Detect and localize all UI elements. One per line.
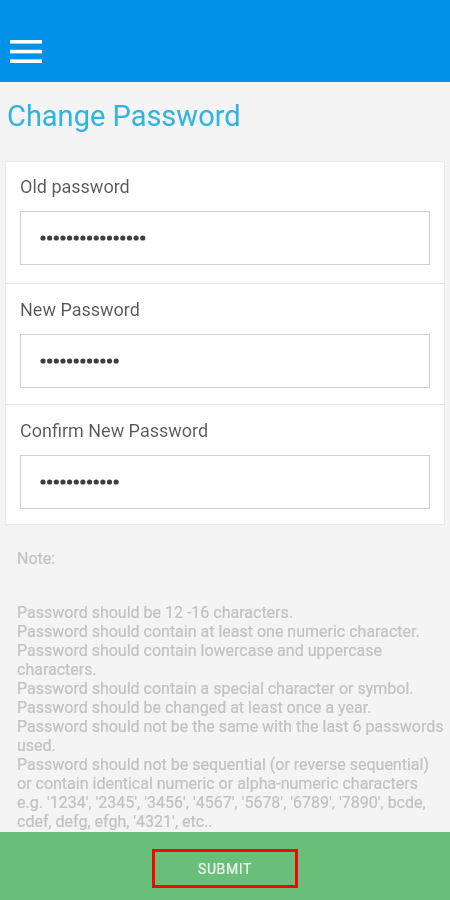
staticText: Password should contain at least one num… xyxy=(17,622,420,641)
staticText: Password should be 12 -16 characters. xyxy=(17,603,293,622)
staticText: Confirm New Password xyxy=(20,420,209,441)
button[interactable]: SUBMIT xyxy=(152,849,298,888)
button[interactable]: Open navigation menu xyxy=(1,31,50,73)
button[interactable]: Confirm New Password xyxy=(20,455,430,509)
button[interactable]: New Password xyxy=(20,334,430,388)
staticText: Change Password xyxy=(7,99,241,133)
staticText: Password should not be sequential (or re… xyxy=(17,755,429,774)
staticText: SUBMIT xyxy=(198,861,252,877)
staticText: used. xyxy=(17,736,56,755)
staticText: Password should not be the same with the… xyxy=(17,717,444,736)
staticText: e.g. '1234', '2345', '3456', '4567', '56… xyxy=(17,793,426,812)
staticText: characters. xyxy=(17,660,97,679)
staticText: Password should contain a special charac… xyxy=(17,679,414,698)
staticText: Note: xyxy=(17,549,56,568)
staticText: Password should be changed at least once… xyxy=(17,698,372,717)
staticText: New Password xyxy=(20,299,140,320)
staticText: or contain identical numeric or alpha-nu… xyxy=(17,774,418,793)
button[interactable]: Old password xyxy=(20,211,430,265)
staticText: Password should contain lowercase and up… xyxy=(17,641,382,660)
staticText: cdef, defg, efgh, '4321', etc.. xyxy=(17,812,213,831)
staticText: Old password xyxy=(20,176,130,197)
